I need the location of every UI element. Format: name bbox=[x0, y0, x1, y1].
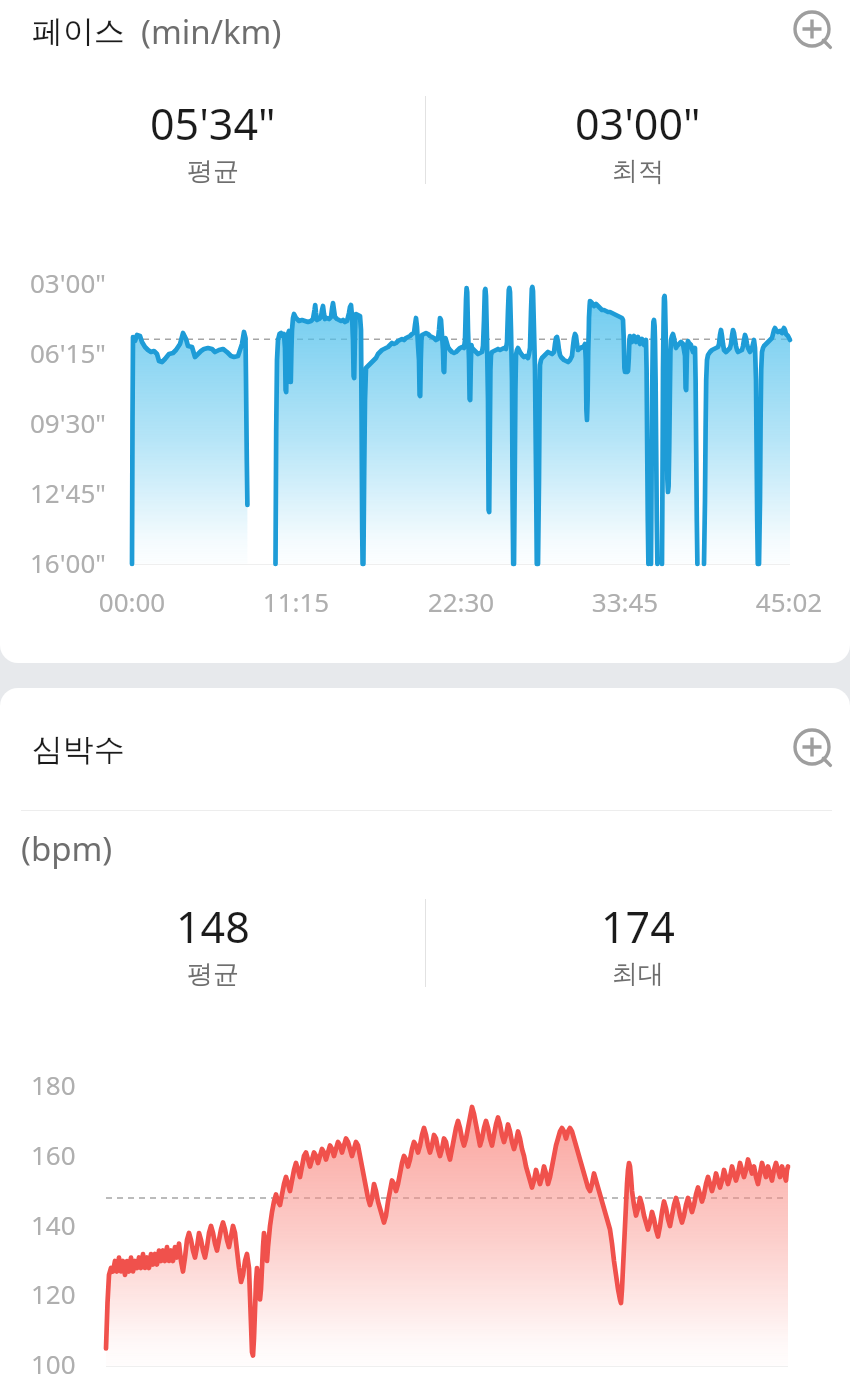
staticText: 평균 bbox=[187, 155, 239, 186]
staticText: 16'00" bbox=[30, 545, 106, 580]
staticText: 03'00" bbox=[30, 265, 106, 300]
staticText: 최적 bbox=[612, 155, 664, 186]
staticText: 33:45 bbox=[565, 584, 685, 619]
staticText: 05'34" bbox=[150, 94, 276, 153]
staticText: 11:15 bbox=[236, 584, 356, 619]
staticText: (bpm) bbox=[21, 826, 113, 871]
staticText: 120 bbox=[31, 1276, 76, 1311]
staticText: 45:02 bbox=[729, 584, 849, 619]
staticText: 페이스 bbox=[32, 12, 125, 51]
staticText: 심박수 bbox=[32, 730, 125, 769]
staticText: 03'00" bbox=[575, 94, 701, 153]
button[interactable]: Zoom in heart rate chart bbox=[786, 721, 842, 777]
staticText: 최대 bbox=[612, 958, 664, 989]
staticText: 00:00 bbox=[72, 584, 192, 619]
staticText: 100 bbox=[31, 1346, 76, 1381]
staticText: 22:30 bbox=[401, 584, 521, 619]
staticText: 174 bbox=[601, 897, 675, 956]
staticText: 180 bbox=[31, 1067, 76, 1102]
staticText: 06'15" bbox=[30, 335, 106, 370]
button[interactable]: Zoom in pace chart bbox=[786, 3, 842, 59]
staticText: 09'30" bbox=[30, 405, 106, 440]
staticText: 평균 bbox=[187, 958, 239, 989]
staticText: 148 bbox=[176, 897, 250, 956]
staticText: (min/km) bbox=[141, 9, 282, 54]
staticText: 140 bbox=[31, 1207, 76, 1242]
staticText: 12'45" bbox=[30, 475, 106, 510]
staticText: 160 bbox=[31, 1137, 76, 1172]
